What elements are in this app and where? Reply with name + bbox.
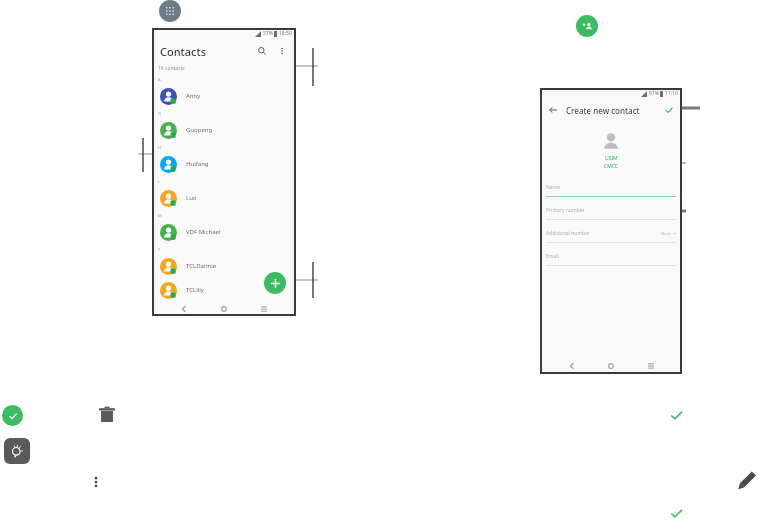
staticText: A: [158, 77, 161, 82]
staticText: Huifang: [186, 160, 209, 168]
staticText: 57%: [649, 90, 659, 97]
staticText: Additional number: [546, 230, 591, 237]
button[interactable]: Email: [540, 248, 682, 271]
button[interactable]: More options: [86, 472, 106, 492]
button[interactable]: VDF Michael: [152, 220, 296, 244]
button[interactable]: Edit: [735, 468, 759, 492]
staticText: H: [158, 145, 161, 150]
button[interactable]: Add contact: [264, 272, 286, 294]
button[interactable]: Luo: [152, 186, 296, 210]
button[interactable]: TCLDannie: [152, 254, 296, 278]
button[interactable]: Huifang: [152, 152, 296, 176]
staticText: None: [661, 231, 672, 236]
staticText: Name: [546, 184, 561, 191]
staticText: Luo: [186, 194, 197, 202]
button[interactable]: Name: [540, 179, 682, 202]
staticText: Email: [546, 253, 559, 260]
button[interactable]: Confirm: [666, 405, 686, 425]
staticText: 57%: [263, 30, 273, 37]
button[interactable]: Recents: [256, 302, 272, 316]
staticText: 16 contacts: [158, 65, 185, 72]
staticText: Contacts: [160, 44, 207, 59]
staticText: T: [158, 247, 161, 252]
button[interactable]: Confirm: [2, 405, 23, 426]
staticText: M: [158, 213, 162, 218]
button[interactable]: Back: [176, 302, 192, 316]
staticText: Primary number: [546, 207, 585, 214]
button[interactable]: Anny: [152, 84, 296, 108]
button[interactable]: Search: [254, 43, 270, 59]
button[interactable]: Flash: [4, 438, 30, 464]
button[interactable]: Confirm: [666, 503, 686, 523]
button[interactable]: Add new contact: [576, 15, 598, 37]
staticText: TCLDannie: [186, 262, 217, 270]
button[interactable]: Home: [216, 302, 232, 316]
button[interactable]: Additional number: [540, 225, 682, 248]
staticText: Anny: [186, 92, 201, 100]
button[interactable]: Back: [546, 103, 560, 117]
button[interactable]: Back: [564, 358, 580, 374]
staticText: L: [158, 179, 161, 184]
button[interactable]: Guopeng: [152, 118, 296, 142]
button[interactable]: Recents: [643, 358, 659, 374]
staticText: USIM: [605, 155, 618, 162]
button[interactable]: TCLlily: [152, 278, 296, 302]
staticText: CMCC: [604, 163, 618, 170]
button[interactable]: More options: [274, 43, 290, 59]
staticText: TCLlily: [186, 286, 204, 294]
button[interactable]: Save: [662, 103, 676, 117]
staticText: VDF Michael: [186, 228, 221, 236]
staticText: 11:10: [665, 90, 678, 97]
button[interactable]: Home: [603, 358, 619, 374]
staticText: Create new contact: [566, 105, 640, 116]
button[interactable]: All apps: [159, 0, 181, 22]
staticText: Guopeng: [186, 126, 213, 134]
button[interactable]: Primary number: [540, 202, 682, 225]
staticText: 18:59: [279, 30, 292, 37]
button[interactable]: Delete: [96, 404, 118, 426]
staticText: G: [158, 111, 161, 116]
